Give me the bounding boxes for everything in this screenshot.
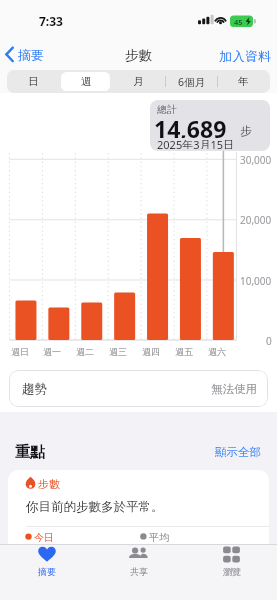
button[interactable]: 摘要 — [18, 47, 48, 62]
staticText: 30,000 — [240, 153, 272, 165]
staticText: 週六 — [208, 346, 226, 357]
staticText: 6個月 — [178, 75, 206, 89]
button[interactable]: 年 — [217, 70, 270, 93]
button[interactable]: 週 — [60, 70, 113, 93]
staticText: 加入資料 — [219, 48, 271, 62]
staticText: 週二 — [76, 346, 94, 357]
staticText: 今日 — [34, 531, 54, 542]
staticText: 摘要 — [18, 47, 44, 62]
staticText: 20,000 — [240, 213, 272, 225]
staticText: 你目前的步數多於平常。 — [26, 499, 164, 515]
button[interactable] — [8, 470, 269, 544]
staticText: 週一 — [43, 346, 61, 357]
button[interactable]: 顯示全部 — [160, 445, 261, 458]
button[interactable] — [96, 545, 181, 585]
button[interactable]: 日 — [7, 70, 60, 93]
staticText: 平均 — [149, 531, 169, 542]
staticText: 顯示全部 — [215, 445, 261, 458]
staticText: 0 — [266, 334, 272, 346]
button[interactable]: 6個月 — [165, 70, 218, 93]
staticText: 重點 — [15, 443, 45, 459]
staticText: 日 — [28, 75, 39, 88]
button[interactable] — [10, 545, 95, 585]
staticText: 週日 — [11, 346, 29, 357]
staticText: 週四 — [142, 346, 160, 357]
staticText: 2025年3月15日 — [157, 137, 235, 149]
staticText: 趨勢 — [22, 381, 47, 397]
staticText: 步數 — [38, 477, 60, 489]
button[interactable] — [9, 370, 268, 407]
staticText: 14,689 — [154, 113, 227, 138]
button[interactable] — [182, 545, 267, 585]
staticText: 月 — [133, 75, 144, 88]
staticText: 週五 — [175, 346, 193, 357]
staticText: 7:33 — [39, 13, 63, 26]
staticText: 摘要 — [38, 566, 56, 577]
staticText: 步 — [240, 124, 252, 138]
staticText: 45 — [234, 17, 243, 27]
staticText: 共享 — [130, 566, 148, 577]
staticText: 週 — [81, 75, 92, 88]
staticText: 瀏覽 — [223, 566, 241, 577]
staticText: 週三 — [109, 346, 127, 357]
staticText: 年 — [238, 75, 249, 88]
staticText: 總計 — [157, 103, 177, 115]
staticText: 10,000 — [240, 274, 272, 286]
button[interactable]: 加入資料 — [215, 48, 271, 62]
button[interactable]: 月 — [112, 70, 165, 93]
staticText: 無法使用 — [211, 382, 257, 396]
staticText: 步數 — [125, 47, 152, 62]
